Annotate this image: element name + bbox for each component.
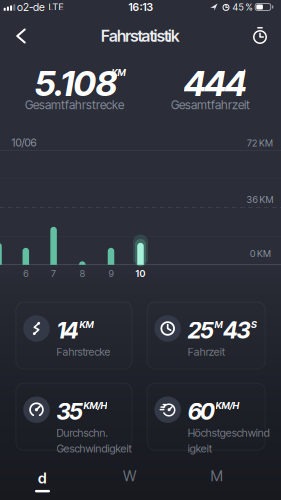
staticText: 72 KM — [247, 137, 273, 148]
staticText: Höchstgeschwind — [188, 427, 270, 439]
staticText: Gesamtfahrzeit — [171, 98, 250, 112]
staticText: Fahrzeit — [188, 345, 225, 358]
staticText: KM — [79, 319, 93, 330]
staticText: 35 — [56, 398, 83, 425]
staticText: o2-de — [17, 1, 45, 13]
staticText: 14 — [56, 317, 79, 344]
staticText: 60 — [188, 398, 215, 425]
staticText: 10 — [135, 268, 145, 279]
staticText: LTE — [48, 1, 63, 12]
staticText: 16:13 — [128, 1, 153, 13]
staticText: 444 — [184, 63, 246, 104]
staticText: 6 — [23, 268, 28, 279]
staticText: KM/H — [216, 400, 240, 411]
staticText: Fahrstrecke — [56, 345, 110, 358]
staticText: Gesamtfahrstrecke — [25, 98, 124, 112]
staticText: 7 — [51, 268, 56, 279]
staticText: KM/H — [83, 400, 107, 411]
staticText: d — [38, 470, 47, 487]
staticText: 45 % — [232, 1, 252, 12]
staticText: 8 — [80, 268, 85, 279]
button[interactable]: Back — [5, 17, 37, 54]
staticText: Durchschn. — [56, 427, 108, 439]
staticText: W — [123, 467, 136, 485]
button[interactable]: d — [35, 470, 50, 492]
button[interactable]: M — [202, 459, 230, 493]
button[interactable]: W — [115, 459, 144, 493]
staticText: 36 KM — [246, 194, 273, 205]
staticText: 25 — [188, 317, 214, 344]
staticText: Geschwindigkeit — [56, 442, 131, 455]
staticText: KM — [111, 67, 125, 78]
button[interactable]: Timer — [242, 18, 278, 54]
staticText: 43 — [223, 317, 250, 344]
staticText: S — [251, 319, 257, 330]
staticText: 5.108 — [35, 63, 117, 104]
staticText: igkeit — [188, 442, 212, 455]
staticText: 9 — [108, 268, 113, 279]
staticText: d — [239, 67, 245, 78]
staticText: Fahrstatistik — [101, 27, 180, 45]
staticText: M — [210, 467, 222, 485]
staticText: 10/06 — [11, 136, 36, 149]
staticText: 0 KM — [250, 248, 271, 259]
staticText: M — [215, 319, 223, 330]
